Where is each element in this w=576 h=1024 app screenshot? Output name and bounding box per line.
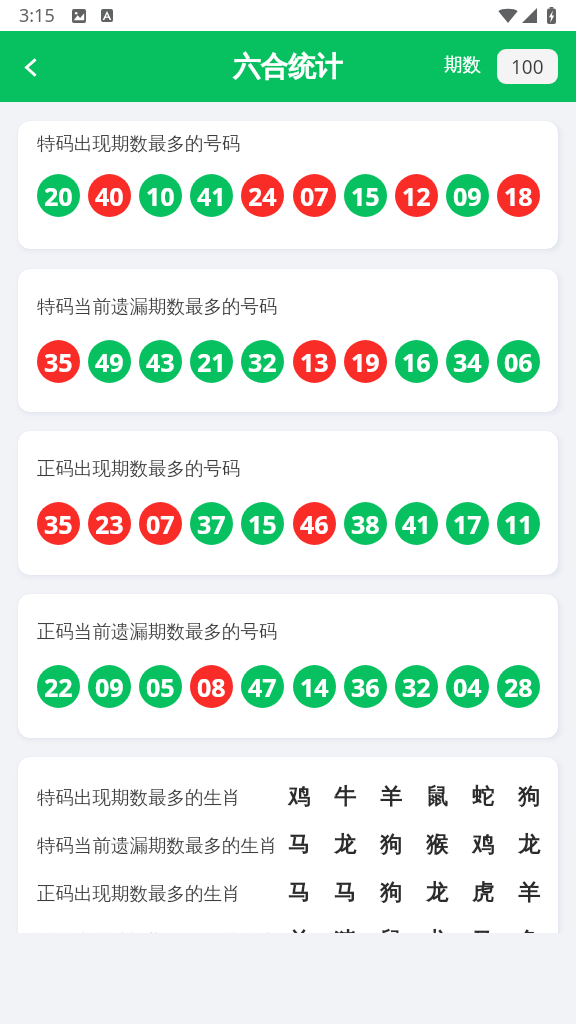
other: Cellular signal <box>522 8 537 23</box>
staticText: 13 <box>300 345 329 379</box>
staticText: 46 <box>300 507 329 541</box>
staticText: 15 <box>351 179 380 213</box>
staticText: 狗 <box>380 831 402 859</box>
staticText: 鼠 <box>426 783 448 811</box>
staticText: 虎 <box>472 879 494 907</box>
staticText: 17 <box>453 507 482 541</box>
staticText: 37 <box>197 507 226 541</box>
staticText: 龙 <box>518 831 540 859</box>
staticText: 40 <box>95 179 124 213</box>
staticText: 43 <box>146 345 175 379</box>
staticText: 18 <box>504 179 533 213</box>
button[interactable]: 特码当前遗漏期数最多的号码 <box>18 269 558 412</box>
staticText: 兔 <box>518 927 540 933</box>
staticText: 猴 <box>426 831 448 859</box>
staticText: 特码出现期数最多的生肖 <box>37 786 241 809</box>
staticText: 马 <box>472 927 494 933</box>
staticText: 龙 <box>426 879 448 907</box>
staticText: 09 <box>453 179 482 213</box>
staticText: 16 <box>402 345 431 379</box>
button[interactable]: Back <box>0 36 62 98</box>
staticText: 24 <box>248 179 277 213</box>
staticText: 正码出现期数最多的生肖 <box>37 882 241 905</box>
staticText: 龙 <box>426 927 448 933</box>
staticText: 特码当前遗漏期数最多的生肖 <box>37 834 278 857</box>
staticText: 羊 <box>380 783 402 811</box>
staticText: 32 <box>402 670 431 704</box>
staticText: 100 <box>511 54 544 80</box>
staticText: 09 <box>95 670 124 704</box>
staticText: 猪 <box>334 927 356 933</box>
staticText: 11 <box>504 507 533 541</box>
staticText: 特码出现期数最多的号码 <box>37 132 241 155</box>
staticText: 21 <box>197 345 226 379</box>
staticText: 鸡 <box>288 783 310 811</box>
staticText: 12 <box>402 179 431 213</box>
staticText: 羊 <box>518 879 540 907</box>
staticText: 牛 <box>334 783 356 811</box>
staticText: 14 <box>300 670 329 704</box>
staticText: 15 <box>248 507 277 541</box>
staticText: 35 <box>44 507 73 541</box>
staticText: 22 <box>44 670 73 704</box>
staticText: 狗 <box>518 783 540 811</box>
staticText: 特码当前遗漏期数最多的号码 <box>37 295 278 318</box>
staticText: 期数 <box>444 53 481 76</box>
staticText: 19 <box>351 345 380 379</box>
staticText: 3:15 <box>19 3 55 28</box>
staticText: 38 <box>351 507 380 541</box>
other: Wi-Fi <box>498 8 518 23</box>
staticText: 47 <box>248 670 277 704</box>
staticText: 07 <box>300 179 329 213</box>
staticText: 34 <box>453 345 482 379</box>
staticText: 36 <box>351 670 380 704</box>
staticText: 41 <box>402 507 431 541</box>
staticText: 07 <box>146 507 175 541</box>
staticText: 马 <box>288 879 310 907</box>
staticText: 35 <box>44 345 73 379</box>
staticText: 28 <box>504 670 533 704</box>
staticText: 马 <box>288 831 310 859</box>
button[interactable]: 特码出现期数最多的生肖 <box>18 757 558 933</box>
staticText: 05 <box>146 670 175 704</box>
staticText: 04 <box>453 670 482 704</box>
staticText: 正码当前遗漏期数最多的号码 <box>37 620 278 643</box>
staticText: 49 <box>95 345 124 379</box>
staticText: 马 <box>334 879 356 907</box>
staticText: 20 <box>44 179 73 213</box>
staticText: 正码出现期数最多的号码 <box>37 457 241 480</box>
staticText: 龙 <box>334 831 356 859</box>
staticText: 六合统计 <box>233 50 343 85</box>
button[interactable]: 特码出现期数最多的号码 <box>18 121 558 249</box>
staticText: 狗 <box>380 879 402 907</box>
button[interactable]: 正码出现期数最多的号码 <box>18 431 558 575</box>
staticText: 06 <box>504 345 533 379</box>
staticText: 鼠 <box>380 927 402 933</box>
staticText: 羊 <box>288 927 310 933</box>
staticText: 蛇 <box>472 783 494 811</box>
staticText: 41 <box>197 179 226 213</box>
button[interactable]: 正码当前遗漏期数最多的号码 <box>18 594 558 738</box>
staticText: 10 <box>146 179 175 213</box>
staticText: 23 <box>95 507 124 541</box>
staticText: 08 <box>197 670 226 704</box>
staticText: 鸡 <box>472 831 494 859</box>
button[interactable]: 100 <box>497 49 558 84</box>
staticText: 32 <box>248 345 277 379</box>
